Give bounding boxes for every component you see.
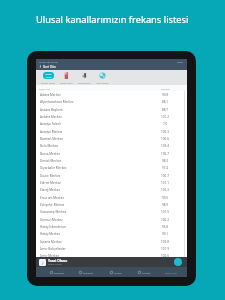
button[interactable]: Radyo Kanal: [39, 70, 57, 85]
button[interactable]: Müzik Türü: [57, 70, 75, 85]
button[interactable]: Geri Dön: [36, 63, 187, 70]
staticText: Eskişehir Merkez: [40, 203, 65, 207]
staticText: 97.4: [162, 166, 169, 170]
button[interactable]: Gaziantep Merkez: [36, 208, 187, 215]
staticText: Antalya Merkez: [40, 130, 63, 134]
staticText: Yozat Okusu: [48, 259, 68, 263]
staticText: İzmir Merkez: [40, 254, 59, 258]
button[interactable]: Denizli Merkez: [36, 157, 187, 164]
staticText: 90.8: [162, 93, 169, 97]
staticText: 105.7: [161, 152, 169, 156]
button[interactable]: Arama: [101, 267, 130, 277]
staticText: 102.6: [161, 254, 169, 258]
button[interactable]: Bursa Merkez: [36, 150, 187, 157]
button[interactable]: Batman Merkez: [36, 135, 187, 142]
staticText: 98.9: [162, 203, 169, 207]
staticText: 101.5: [161, 210, 169, 214]
staticText: Gaziantep Merkez: [40, 210, 67, 214]
button[interactable]: Favoriler: [72, 267, 101, 277]
button[interactable]: Antalya Merkez: [36, 128, 187, 135]
staticText: 7.0: [163, 122, 168, 126]
staticText: Ulusal kanallarımızın frekans listesi: [36, 13, 189, 26]
staticText: Denizli Merkez: [40, 159, 62, 163]
staticText: 102.3: [161, 188, 169, 192]
button[interactable]: Hatay Merkez: [36, 230, 187, 237]
button[interactable]: Antalya Falezli: [36, 120, 187, 127]
staticText: 101.1: [161, 181, 169, 185]
button[interactable]: Play: [174, 258, 182, 266]
staticText: Hatay İskenderun: [40, 225, 66, 229]
staticText: Radyolar: [54, 271, 65, 274]
staticText: Web Radyo: [96, 81, 109, 84]
staticText: 103.8: [161, 240, 169, 244]
staticText: Antalya Falezli: [40, 122, 61, 126]
staticText: 88.1: [162, 100, 169, 104]
staticText: Yerel Radyo: [77, 81, 91, 84]
staticText: 10:45 Sal 14 Ara: [39, 60, 58, 63]
staticText: Afyonkarahisar Merkez: [40, 100, 74, 104]
button[interactable]: Ankara Merkez: [36, 113, 187, 120]
staticText: 100%: [177, 60, 184, 63]
button[interactable]: İzmir Merkez: [36, 252, 187, 259]
staticText: Isparta Merkez: [40, 240, 62, 244]
staticText: 99.1: [162, 232, 169, 236]
staticText: Geri Dön: [43, 65, 56, 69]
button[interactable]: İzmir Bahçelievler: [36, 245, 187, 252]
staticText: Radyo Kanal: [41, 81, 55, 84]
staticText: Bursa Merkez: [40, 152, 60, 156]
staticText: 99.5: [162, 196, 169, 200]
staticText: Hatay Merkez: [40, 232, 60, 236]
button[interactable]: Radyolar: [43, 267, 72, 277]
staticText: 88.7: [162, 108, 169, 112]
button[interactable]: Afyonkarahisar Merkez: [36, 98, 187, 105]
button[interactable]: Diyarbakır Merkez: [36, 164, 187, 171]
button[interactable]: Edirne Merkez: [36, 179, 187, 186]
staticText: 100.6: [161, 137, 169, 141]
staticText: 95.8: [162, 225, 169, 229]
button[interactable]: Ayarlar: [130, 267, 159, 277]
staticText: Radyo Kanalı: [48, 263, 62, 266]
staticText: Arama: [114, 271, 122, 274]
staticText: Giresun Merkez: [40, 218, 63, 222]
staticText: Müzik Türü: [60, 81, 73, 84]
staticText: Bolu Merkez: [40, 144, 59, 148]
staticText: Mini Çalar: [165, 271, 177, 274]
button[interactable]: Isparta Merkez: [36, 238, 187, 245]
button[interactable]: Düzce Merkez: [36, 172, 187, 179]
staticText: Düzce Merkez: [40, 174, 61, 178]
staticText: 101.9: [161, 247, 169, 251]
button[interactable]: Elazığ Merkez: [36, 186, 187, 193]
button[interactable]: Eskişehir Merkez: [36, 201, 187, 208]
staticText: Favoriler: [83, 271, 94, 274]
button[interactable]: Web Radyo: [93, 70, 111, 85]
button[interactable]: Erzurum Merkez: [36, 194, 187, 201]
staticText: Elazığ Merkez: [40, 188, 60, 192]
staticText: Batman Merkez: [40, 137, 63, 141]
button[interactable]: Giresun Merkez: [36, 216, 187, 223]
staticText: Ayarlar: [142, 271, 151, 274]
button[interactable]: Yerel Radyo: [75, 70, 93, 85]
staticText: Kanal Adı: [39, 87, 50, 90]
staticText: 98.3: [162, 159, 169, 163]
staticText: Radyo Kanal: [45, 73, 52, 78]
staticText: Erzurum Merkez: [40, 196, 64, 200]
button[interactable]: Adana Merkez: [36, 91, 187, 98]
staticText: Diyarbakır Merkez: [40, 166, 67, 170]
staticText: Edirne Merkez: [40, 181, 61, 185]
staticText: Adana Merkez: [40, 93, 61, 97]
staticText: Frekans: [161, 87, 170, 90]
staticText: 100.3: [161, 130, 169, 134]
staticText: 100.7: [161, 174, 169, 178]
staticText: 103.4: [161, 144, 169, 148]
button[interactable]: Mini Çalar: [159, 267, 183, 277]
button[interactable]: Ankara Başkent: [36, 106, 187, 113]
button[interactable]: Hatay İskenderun: [36, 223, 187, 230]
button[interactable]: Bolu Merkez: [36, 142, 187, 149]
staticText: 100.2: [161, 218, 169, 222]
staticText: İzmir Bahçelievler: [40, 247, 66, 251]
staticText: Ankara Merkez: [40, 115, 62, 119]
staticText: Ankara Başkent: [40, 108, 63, 112]
staticText: 101.2: [161, 115, 169, 119]
